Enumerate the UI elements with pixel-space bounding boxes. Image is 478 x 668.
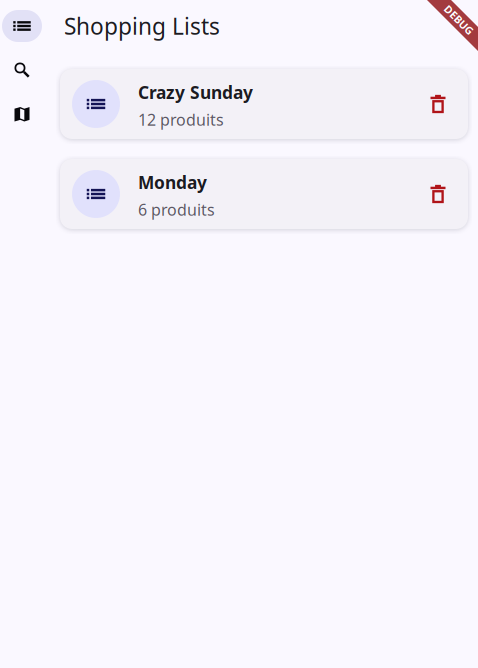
button[interactable]: Monday <box>60 159 468 229</box>
staticText: 6 produits <box>138 199 215 220</box>
button[interactable]: Crazy Sunday <box>60 69 468 139</box>
button[interactable]: Map <box>0 92 44 136</box>
button[interactable]: Lists <box>0 4 44 48</box>
button[interactable]: Delete Crazy Sunday <box>416 80 460 128</box>
staticText: Shopping Lists <box>64 11 220 41</box>
button[interactable]: Delete Monday <box>416 170 460 218</box>
staticText: Crazy Sunday <box>138 81 253 104</box>
staticText: DEBUG <box>440 13 477 27</box>
staticText: 12 produits <box>138 109 224 130</box>
button[interactable]: Search <box>0 48 44 92</box>
staticText: Monday <box>138 171 207 194</box>
